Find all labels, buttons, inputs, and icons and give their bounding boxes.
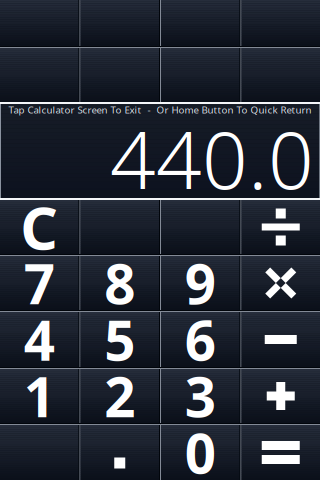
- button[interactable]: Key: [80, 48, 159, 102]
- button[interactable]: Key: [161, 48, 239, 102]
- button[interactable]: Multiply: [241, 256, 320, 310]
- button[interactable]: 3: [161, 369, 239, 423]
- button[interactable]: 0: [161, 425, 239, 480]
- button[interactable]: Key: [80, 0, 159, 46]
- staticText: C: [20, 188, 58, 266]
- button[interactable]: Key: [0, 48, 78, 102]
- button[interactable]: 6: [161, 312, 239, 367]
- button[interactable]: Key: [80, 200, 159, 254]
- button[interactable]: Plus: [241, 369, 320, 423]
- staticText: 6: [185, 303, 216, 376]
- button[interactable]: 7: [0, 256, 78, 310]
- button[interactable]: Key: [161, 0, 239, 46]
- button[interactable]: 9: [161, 256, 239, 310]
- button[interactable]: Divide: [241, 200, 320, 254]
- staticText: 4: [24, 303, 55, 376]
- staticText: 5: [104, 303, 135, 376]
- staticText: 8: [104, 247, 135, 319]
- button[interactable]: Decimal point: [80, 425, 159, 480]
- staticText: Tap Calculator Screen To Exit - Or Home …: [8, 103, 311, 116]
- button[interactable]: 2: [80, 369, 159, 423]
- button[interactable]: 5: [80, 312, 159, 367]
- staticText: 3: [185, 360, 216, 432]
- staticText: 7: [24, 247, 55, 319]
- button[interactable]: Key: [161, 200, 239, 254]
- button[interactable]: 1: [0, 369, 78, 423]
- button[interactable]: 4: [0, 312, 78, 367]
- staticText: 440.0: [110, 105, 314, 211]
- button[interactable]: Key: [0, 425, 78, 480]
- staticText: 1: [24, 360, 55, 432]
- staticText: 2: [104, 360, 135, 432]
- button[interactable]: Key: [241, 48, 320, 102]
- staticText: 9: [185, 247, 216, 319]
- button[interactable]: Key: [0, 0, 78, 46]
- button[interactable]: 8: [80, 256, 159, 310]
- button[interactable]: Minus: [241, 312, 320, 367]
- button[interactable]: Equals: [241, 425, 320, 480]
- staticText: 0: [185, 416, 216, 480]
- button[interactable]: Key: [241, 0, 320, 46]
- button[interactable]: C: [0, 200, 78, 254]
